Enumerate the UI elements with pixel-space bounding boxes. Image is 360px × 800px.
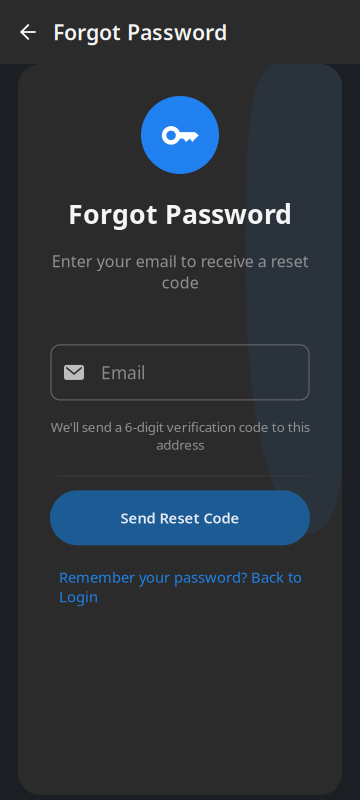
staticText: Remember your password? Back to Login	[59, 567, 302, 606]
button[interactable]: Send Reset Code	[50, 490, 310, 545]
button[interactable]: Email	[51, 345, 309, 400]
staticText: Forgot Password	[53, 18, 227, 46]
staticText: Email	[101, 361, 145, 384]
staticText: We'll send a 6-digit verification code t…	[50, 418, 309, 453]
staticText: Enter your email to receive a reset code	[51, 250, 308, 293]
button[interactable]: Back	[6, 10, 50, 54]
button[interactable]: Remember your password? Back to Login	[57, 567, 303, 606]
staticText: Send Reset Code	[120, 508, 239, 528]
staticText: Forgot Password	[68, 196, 292, 231]
